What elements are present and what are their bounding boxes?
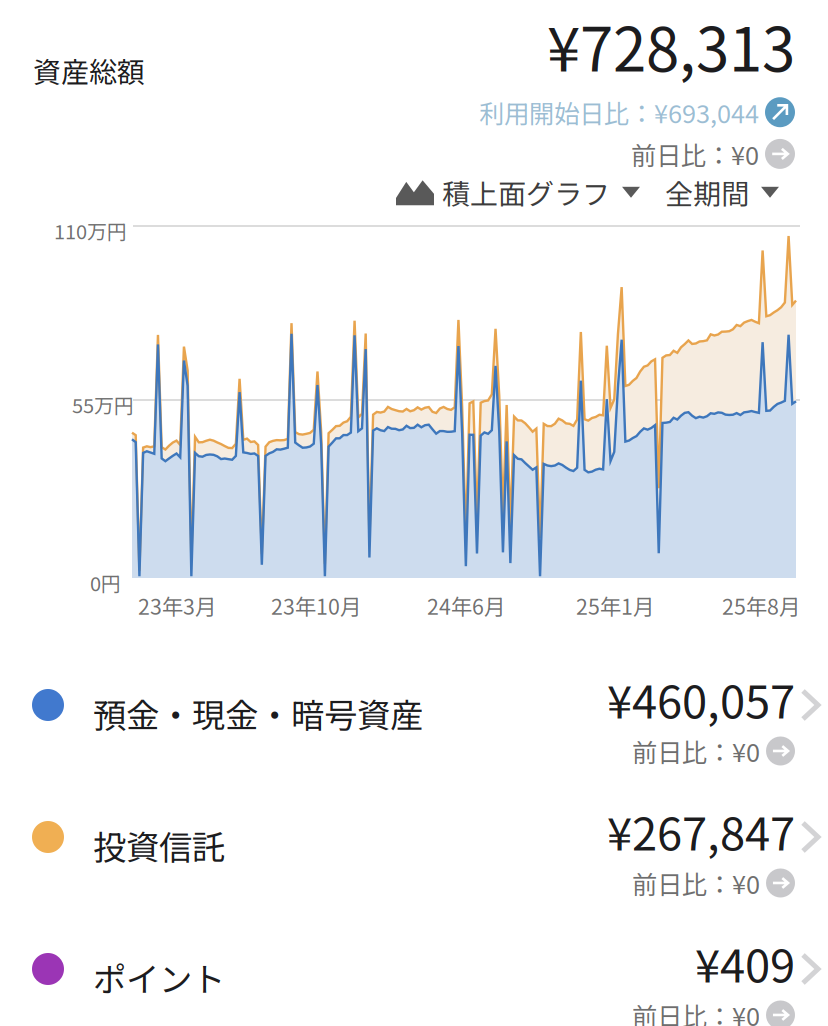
staticText: 55万円	[72, 390, 134, 419]
staticText: 前日比：¥0	[632, 997, 760, 1026]
staticText: 110万円	[54, 216, 127, 245]
staticText: ポイント	[93, 953, 225, 1001]
staticText: 資産総額	[33, 50, 145, 90]
staticText: 0円	[90, 568, 121, 597]
button[interactable]: 利用開始日比：¥693,044	[479, 94, 795, 131]
staticText: 利用開始日比：¥693,044	[479, 94, 759, 131]
button[interactable]: 投資信託	[0, 772, 828, 904]
staticText: 24年6月	[427, 590, 505, 621]
staticText: 投資信託	[93, 821, 225, 869]
staticText: 全期間	[665, 172, 749, 212]
staticText: 前日比：¥0	[632, 733, 760, 769]
staticText: 23年10月	[271, 590, 361, 621]
staticText: 積上面グラフ	[442, 172, 610, 212]
button[interactable]: 全期間	[665, 172, 779, 212]
staticText: ¥728,313	[547, 2, 795, 89]
staticText: ¥409	[695, 930, 795, 996]
button[interactable]: 前日比：¥0	[631, 136, 795, 172]
button[interactable]: 預金・現金・暗号資産	[0, 640, 828, 772]
staticText: ¥267,847	[607, 798, 795, 864]
staticText: 25年8月	[722, 590, 800, 621]
staticText: 25年1月	[576, 590, 654, 621]
button[interactable]: 積上面グラフ	[396, 172, 640, 212]
staticText: 前日比：¥0	[631, 136, 759, 172]
staticText: 前日比：¥0	[632, 865, 760, 901]
staticText: 預金・現金・暗号資産	[93, 689, 423, 737]
staticText: ¥460,057	[607, 666, 795, 732]
button[interactable]: ポイント	[0, 904, 828, 1026]
staticText: 23年3月	[138, 590, 216, 621]
